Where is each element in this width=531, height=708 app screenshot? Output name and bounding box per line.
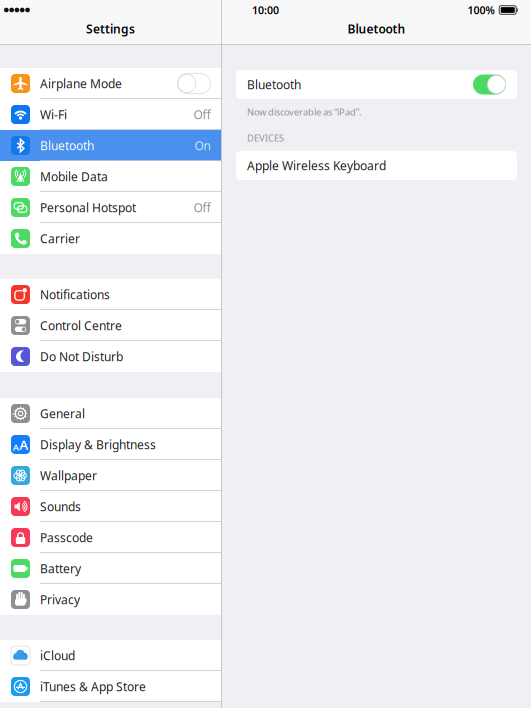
staticText: General [40,405,85,421]
button[interactable]: Wi-Fi [0,99,221,130]
button[interactable]: Mobile Data [0,161,221,192]
staticText: Off [193,199,210,215]
staticText: Apple Wireless Keyboard [247,157,386,173]
staticText: A [13,441,19,453]
staticText: Carrier [40,230,80,246]
button[interactable]: Notifications [0,279,221,310]
button[interactable]: Do Not Disturb [0,341,221,372]
button[interactable]: Battery [0,553,221,584]
staticText: Off [193,106,210,122]
staticText: Airplane Mode [40,75,122,91]
staticText: Personal Hotspot [40,199,136,215]
staticText: Bluetooth [347,21,405,37]
staticText: A [19,436,28,453]
staticText: Sounds [40,498,81,514]
staticText: DEVICES [247,132,284,144]
button[interactable]: Control Centre [0,310,221,341]
staticText: Do Not Disturb [40,348,123,364]
button[interactable]: Passcode [0,522,221,553]
staticText: Wi-Fi [40,106,67,122]
button[interactable]: Apple Wireless Keyboard [222,151,531,180]
staticText: Display & Brightness [40,436,156,452]
button[interactable]: General [0,398,221,429]
staticText: Bluetooth [247,76,301,92]
staticText: 10:00 [252,3,279,17]
button[interactable]: iCloud [0,640,221,671]
staticText: iCloud [40,647,75,663]
button[interactable]: Airplane Mode [0,68,221,99]
staticText: Battery [40,560,81,576]
staticText: Wallpaper [40,467,97,483]
button[interactable]: Bluetooth [0,130,221,161]
staticText: iTunes & App Store [40,678,146,694]
staticText: Privacy [40,591,80,607]
staticText: Now discoverable as “iPad”. [247,106,362,118]
staticText: Settings [86,21,135,37]
button[interactable]: A [0,429,221,460]
staticText: Notifications [40,286,110,302]
staticText: On [194,137,210,153]
staticText: Mobile Data [40,168,108,184]
button[interactable]: Wallpaper [0,460,221,491]
staticText: Passcode [40,529,93,545]
button[interactable]: iTunes & App Store [0,671,221,702]
button[interactable]: Sounds [0,491,221,522]
staticText: 100% [467,3,494,17]
staticText: Bluetooth [40,137,94,153]
staticText: Control Centre [40,317,122,333]
button[interactable]: Carrier [0,223,221,254]
button[interactable]: Privacy [0,584,221,615]
button[interactable]: Bluetooth [222,70,531,99]
button[interactable]: Personal Hotspot [0,192,221,223]
